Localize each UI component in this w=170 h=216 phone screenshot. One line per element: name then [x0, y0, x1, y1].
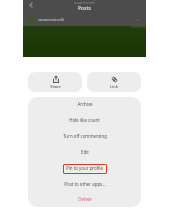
staticText: Share: [50, 84, 61, 89]
staticText: susanmarinelli: [74, 1, 95, 5]
button[interactable]: Share: [28, 72, 82, 92]
staticText: Hide like count: [69, 117, 100, 123]
staticText: susanmarinelli: [38, 17, 64, 22]
staticText: Archive: [77, 101, 93, 107]
staticText: Turn off commenting: [63, 133, 107, 139]
other: More options: [135, 17, 141, 23]
staticText: Posts: [78, 5, 91, 12]
button[interactable]: Edit: [28, 145, 141, 161]
other: Share: [53, 76, 59, 83]
button[interactable]: Copy link: [87, 72, 141, 92]
button[interactable]: Archive: [28, 97, 141, 113]
button[interactable]: Pin to your profile: [28, 161, 141, 177]
staticText: Post to other apps…: [64, 181, 106, 187]
staticText: Link: [110, 84, 118, 89]
staticText: Pin to your profile: [66, 165, 103, 171]
staticText: Delete: [78, 196, 92, 202]
button[interactable]: Hide like count: [28, 113, 141, 129]
other: Copy link: [111, 76, 118, 83]
other: Back: [28, 2, 34, 8]
button[interactable]: Turn off commenting: [28, 129, 141, 145]
button[interactable]: Post to other apps…: [28, 177, 141, 193]
button[interactable]: Delete: [28, 193, 141, 207]
staticText: Edit: [81, 149, 89, 155]
